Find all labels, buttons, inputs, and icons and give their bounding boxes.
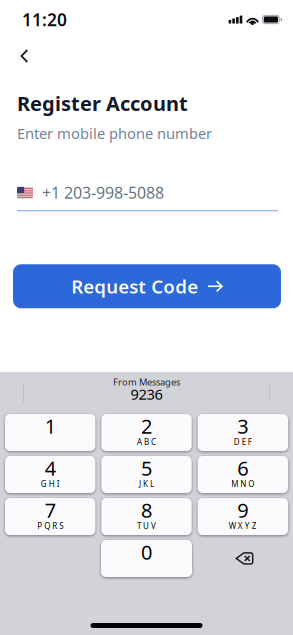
button[interactable]: 0 [101, 540, 192, 577]
staticText: 3 [237, 413, 248, 439]
button[interactable]: 5 [101, 456, 192, 493]
staticText: 1 [45, 413, 56, 439]
staticText: A B C [137, 437, 156, 447]
button[interactable]: 3 [198, 414, 288, 451]
button[interactable]: 1 [5, 414, 95, 451]
button[interactable]: 8 [101, 498, 192, 535]
staticText: 9 [237, 497, 248, 523]
staticText: 11:20 [22, 8, 67, 31]
staticText: +1 203-998-5088 [42, 182, 164, 203]
button[interactable]: Back [0, 39, 42, 75]
staticText: 5 [141, 455, 152, 481]
button[interactable]: Delete [198, 540, 288, 577]
button[interactable]: 7 [5, 498, 95, 535]
staticText: From Messages [113, 376, 180, 388]
staticText: Register Account [17, 90, 188, 117]
button[interactable]: Request Code [13, 264, 281, 308]
button[interactable]: 6 [198, 456, 288, 493]
staticText: P Q R S [37, 521, 63, 531]
staticText: D E F [234, 437, 252, 447]
button[interactable]: 9 [198, 498, 288, 535]
staticText: 7 [45, 497, 56, 523]
staticText: 0 [141, 539, 152, 565]
staticText: G H I [41, 479, 60, 489]
staticText: 6 [237, 455, 248, 481]
button[interactable]: 2 [101, 414, 192, 451]
staticText: 8 [141, 497, 152, 523]
staticText: M N O [231, 479, 254, 489]
staticText: 9236 [130, 384, 162, 404]
staticText: W X Y Z [229, 521, 257, 531]
button[interactable]: 4 [5, 456, 95, 493]
staticText: 2 [141, 413, 152, 439]
staticText: T U V [137, 521, 156, 531]
staticText: 4 [45, 455, 56, 481]
staticText: Request Code [71, 274, 198, 299]
staticText: Enter mobile phone number [17, 124, 212, 143]
staticText: J K L [139, 479, 154, 489]
